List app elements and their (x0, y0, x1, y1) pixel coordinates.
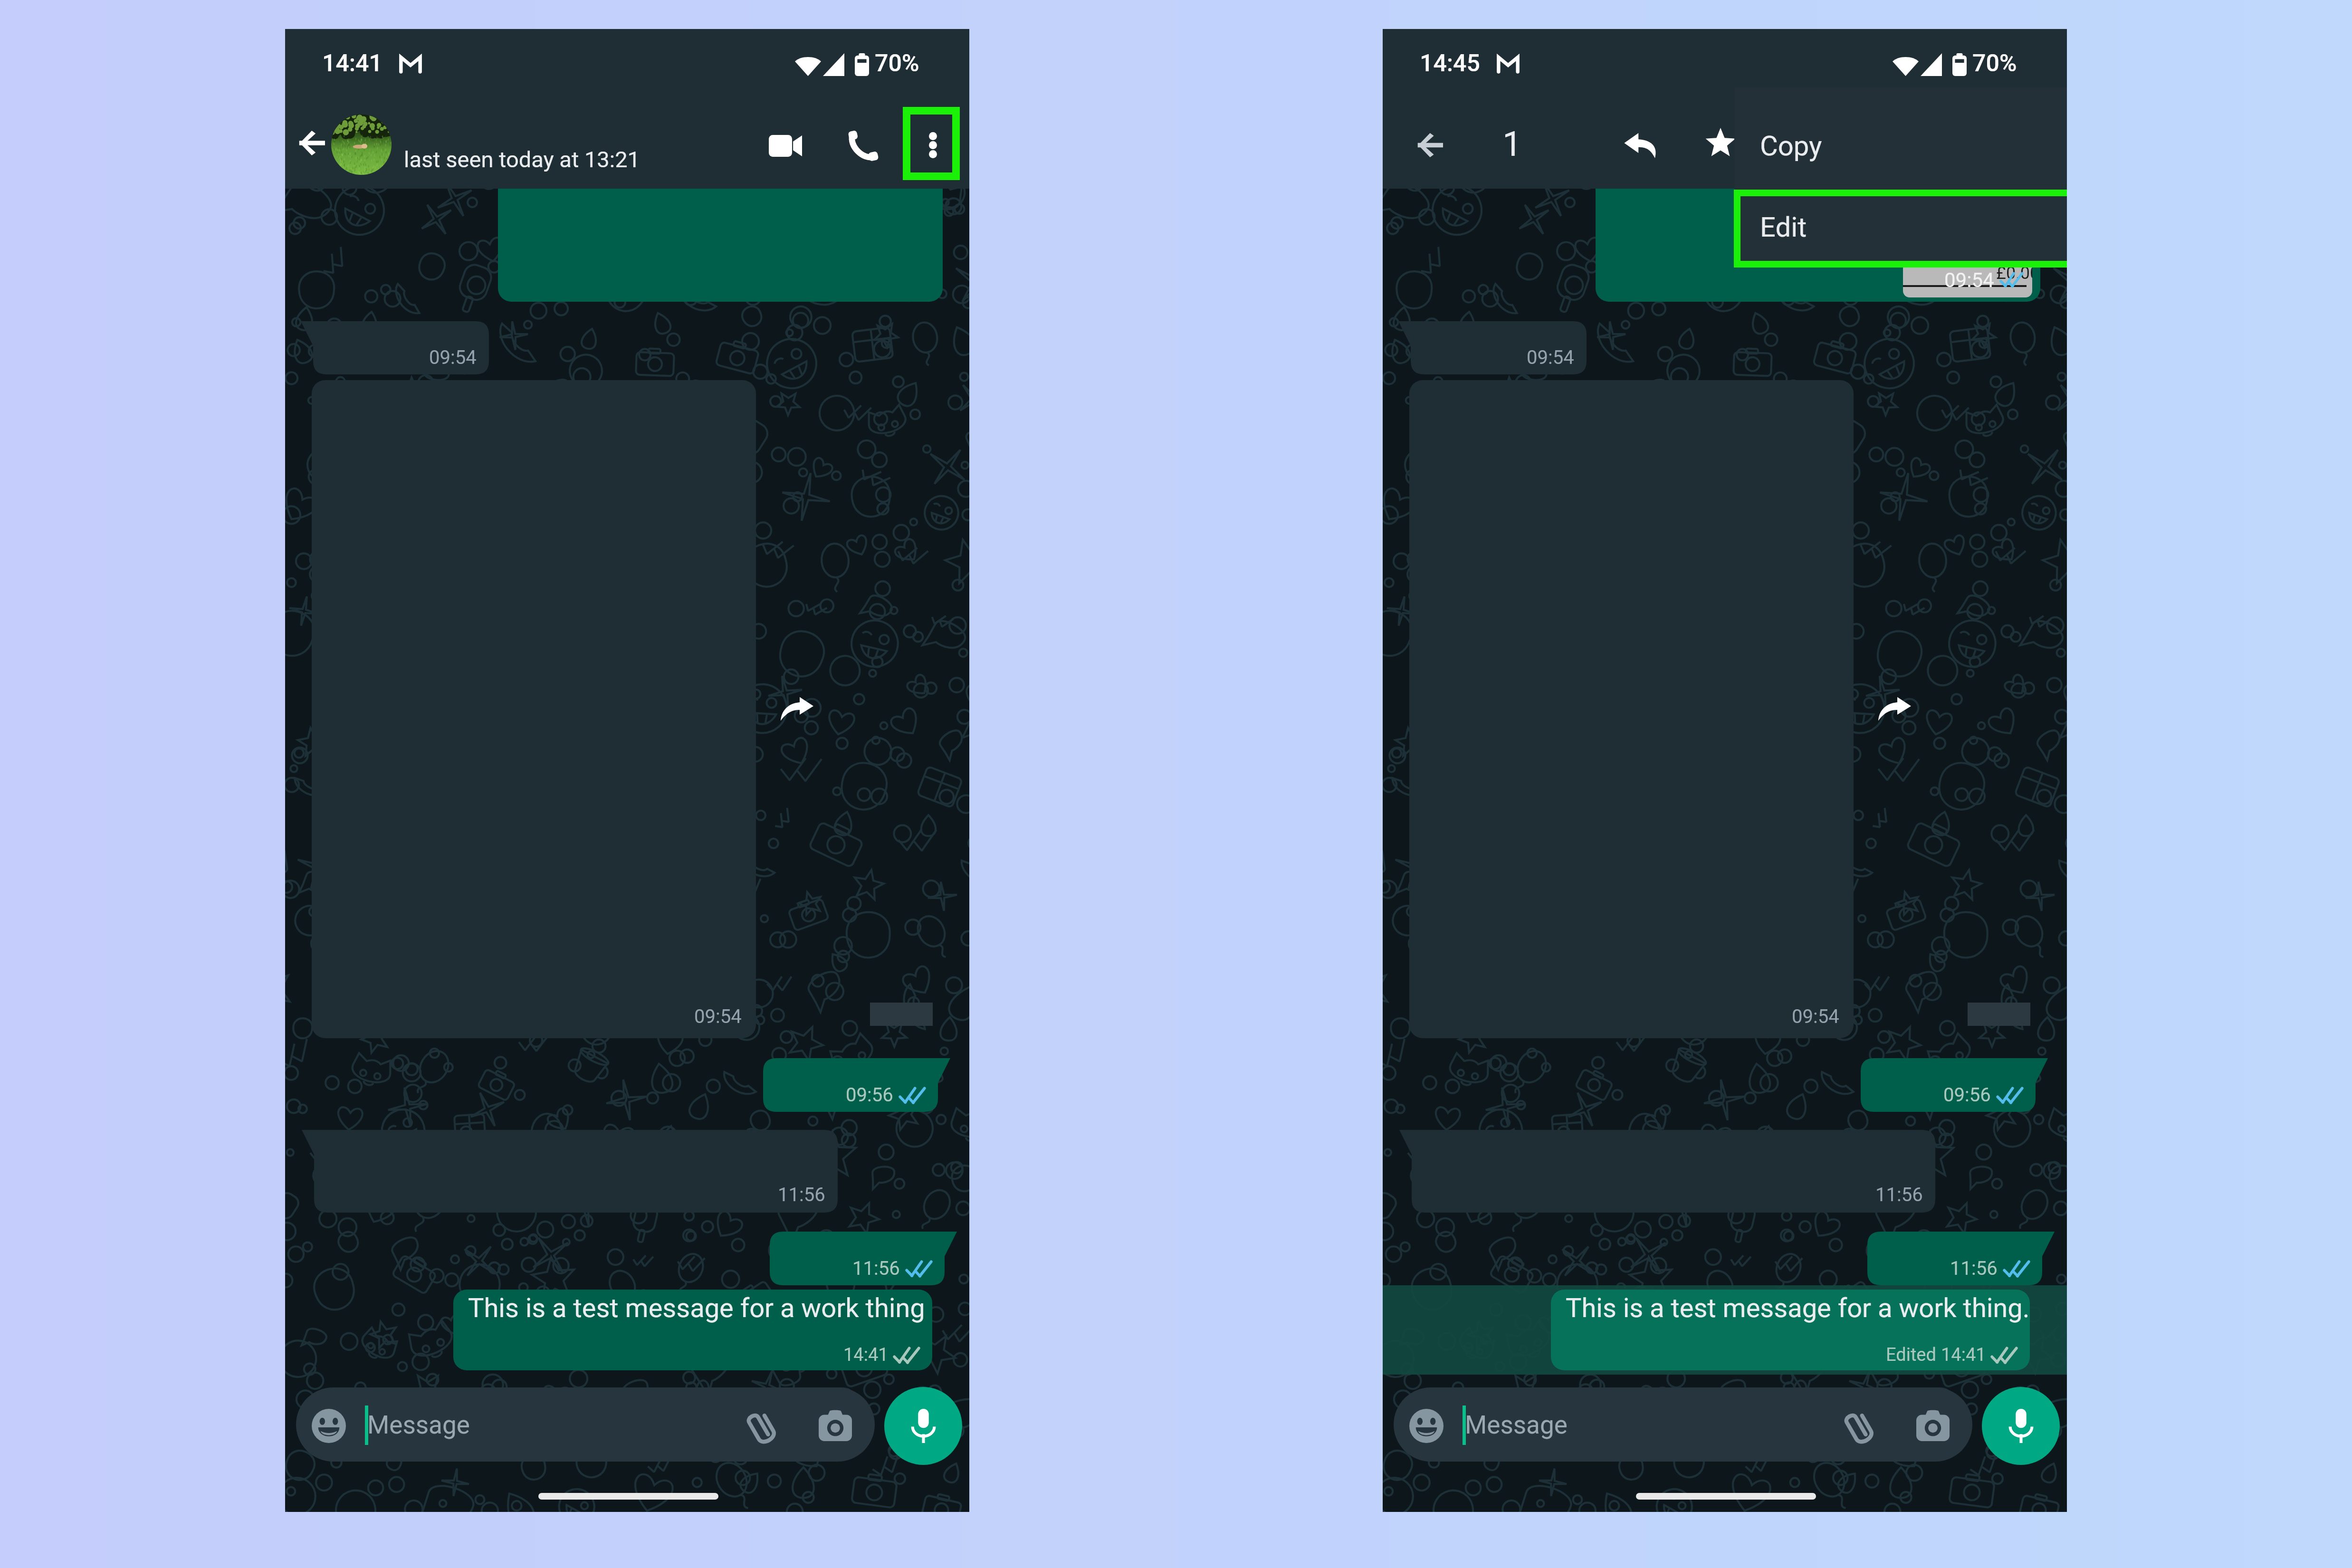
staticText: 09:54 (1944, 268, 1994, 292)
button[interactable]: Record voice message (884, 1387, 962, 1465)
button[interactable]: Attach (1830, 1398, 1889, 1457)
button[interactable]: Camera (1904, 1397, 1961, 1454)
button[interactable]: Reply (1612, 117, 1669, 174)
staticText: 09:54 (694, 1005, 742, 1028)
button[interactable]: Back (1402, 118, 1456, 172)
staticText: 09:54 (1527, 346, 1574, 369)
staticText: 14:45 (1420, 49, 1480, 77)
staticText: 1 (1502, 124, 1522, 164)
staticText: 70% (875, 49, 919, 77)
staticText: 09:56 (846, 1084, 893, 1106)
button[interactable]: Contact profile photo (331, 115, 392, 175)
button[interactable]: last seen today at 13:21 (399, 108, 694, 189)
staticText: 11:56 (1875, 1184, 1923, 1206)
button[interactable]: 09:54 (312, 380, 756, 1038)
button[interactable]: Video call (757, 118, 813, 174)
staticText: 11:56 (852, 1257, 900, 1280)
staticText: 11:56 (778, 1184, 825, 1206)
staticText: This is a test message for a work thing (468, 1292, 925, 1324)
button[interactable]: Record voice message (1982, 1387, 2060, 1465)
staticText: £0.00 (1996, 267, 2032, 283)
staticText: Message (1465, 1410, 1568, 1440)
staticText: last seen today at 13:21 (404, 146, 640, 172)
staticText: 09:56 (1943, 1084, 1991, 1106)
button[interactable]: 09:54 (1409, 380, 1854, 1038)
staticText: This is a test message for a work thing. (1566, 1292, 2030, 1324)
button[interactable]: This is a test message for a work thing. (1551, 1290, 2030, 1370)
staticText: 14:41 (322, 49, 382, 77)
staticText: 09:54 (1792, 1005, 1839, 1028)
staticText: Copy (1760, 130, 1822, 162)
button[interactable]: Edit (1734, 190, 2067, 264)
button[interactable]: Back (286, 118, 336, 168)
button[interactable]: Emoji (1397, 1396, 1456, 1455)
button[interactable] (296, 1387, 875, 1462)
button[interactable]: Voice call (835, 118, 891, 174)
button[interactable]: More options (904, 108, 961, 182)
staticText: 14:41 (843, 1344, 889, 1366)
staticText: Edit (1760, 211, 1807, 243)
button[interactable]: Emoji (299, 1396, 358, 1455)
staticText: 14:41 (1941, 1344, 1986, 1366)
staticText: Message (367, 1410, 470, 1440)
button[interactable]: Forward (1852, 673, 1937, 745)
button[interactable]: Copy (1734, 87, 2067, 190)
button[interactable]: This is a test message for a work thing (453, 1290, 932, 1370)
button[interactable]: Star (1692, 115, 1749, 172)
button[interactable]: Forward (755, 673, 840, 745)
button[interactable]: Attach (732, 1398, 792, 1457)
staticText: 11:56 (1950, 1257, 1998, 1280)
staticText: Edited (1886, 1344, 1941, 1366)
staticText: 70% (1972, 49, 2017, 77)
staticText: 09:54 (429, 346, 477, 369)
button[interactable] (1394, 1387, 1972, 1462)
button[interactable]: Camera (807, 1397, 864, 1454)
